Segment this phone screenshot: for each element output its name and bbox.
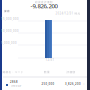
staticText: 250,000 [41,82,54,86]
staticText: 2868 [10,80,18,84]
staticText: 数量 [44,70,50,74]
staticText: 3,826,200 [65,82,81,86]
staticText: 15,000,000 [1,17,19,21]
staticText: 総資産評価額 [35,0,53,4]
staticText: 12/31 [45,58,54,62]
staticText: 5,000,000 [1,41,17,45]
staticText: 評価額 [66,70,75,74]
button[interactable]: 2868 [3,78,87,90]
staticText: -9,826,200 [30,2,57,10]
staticText: 保有 [4,9,10,13]
staticText: 銘柄名・コード [2,70,23,74]
staticText: iFreeETF [11,84,21,88]
staticText: 10,000,000 [1,29,19,33]
staticText: 2024/12/31 時点 [55,12,80,15]
